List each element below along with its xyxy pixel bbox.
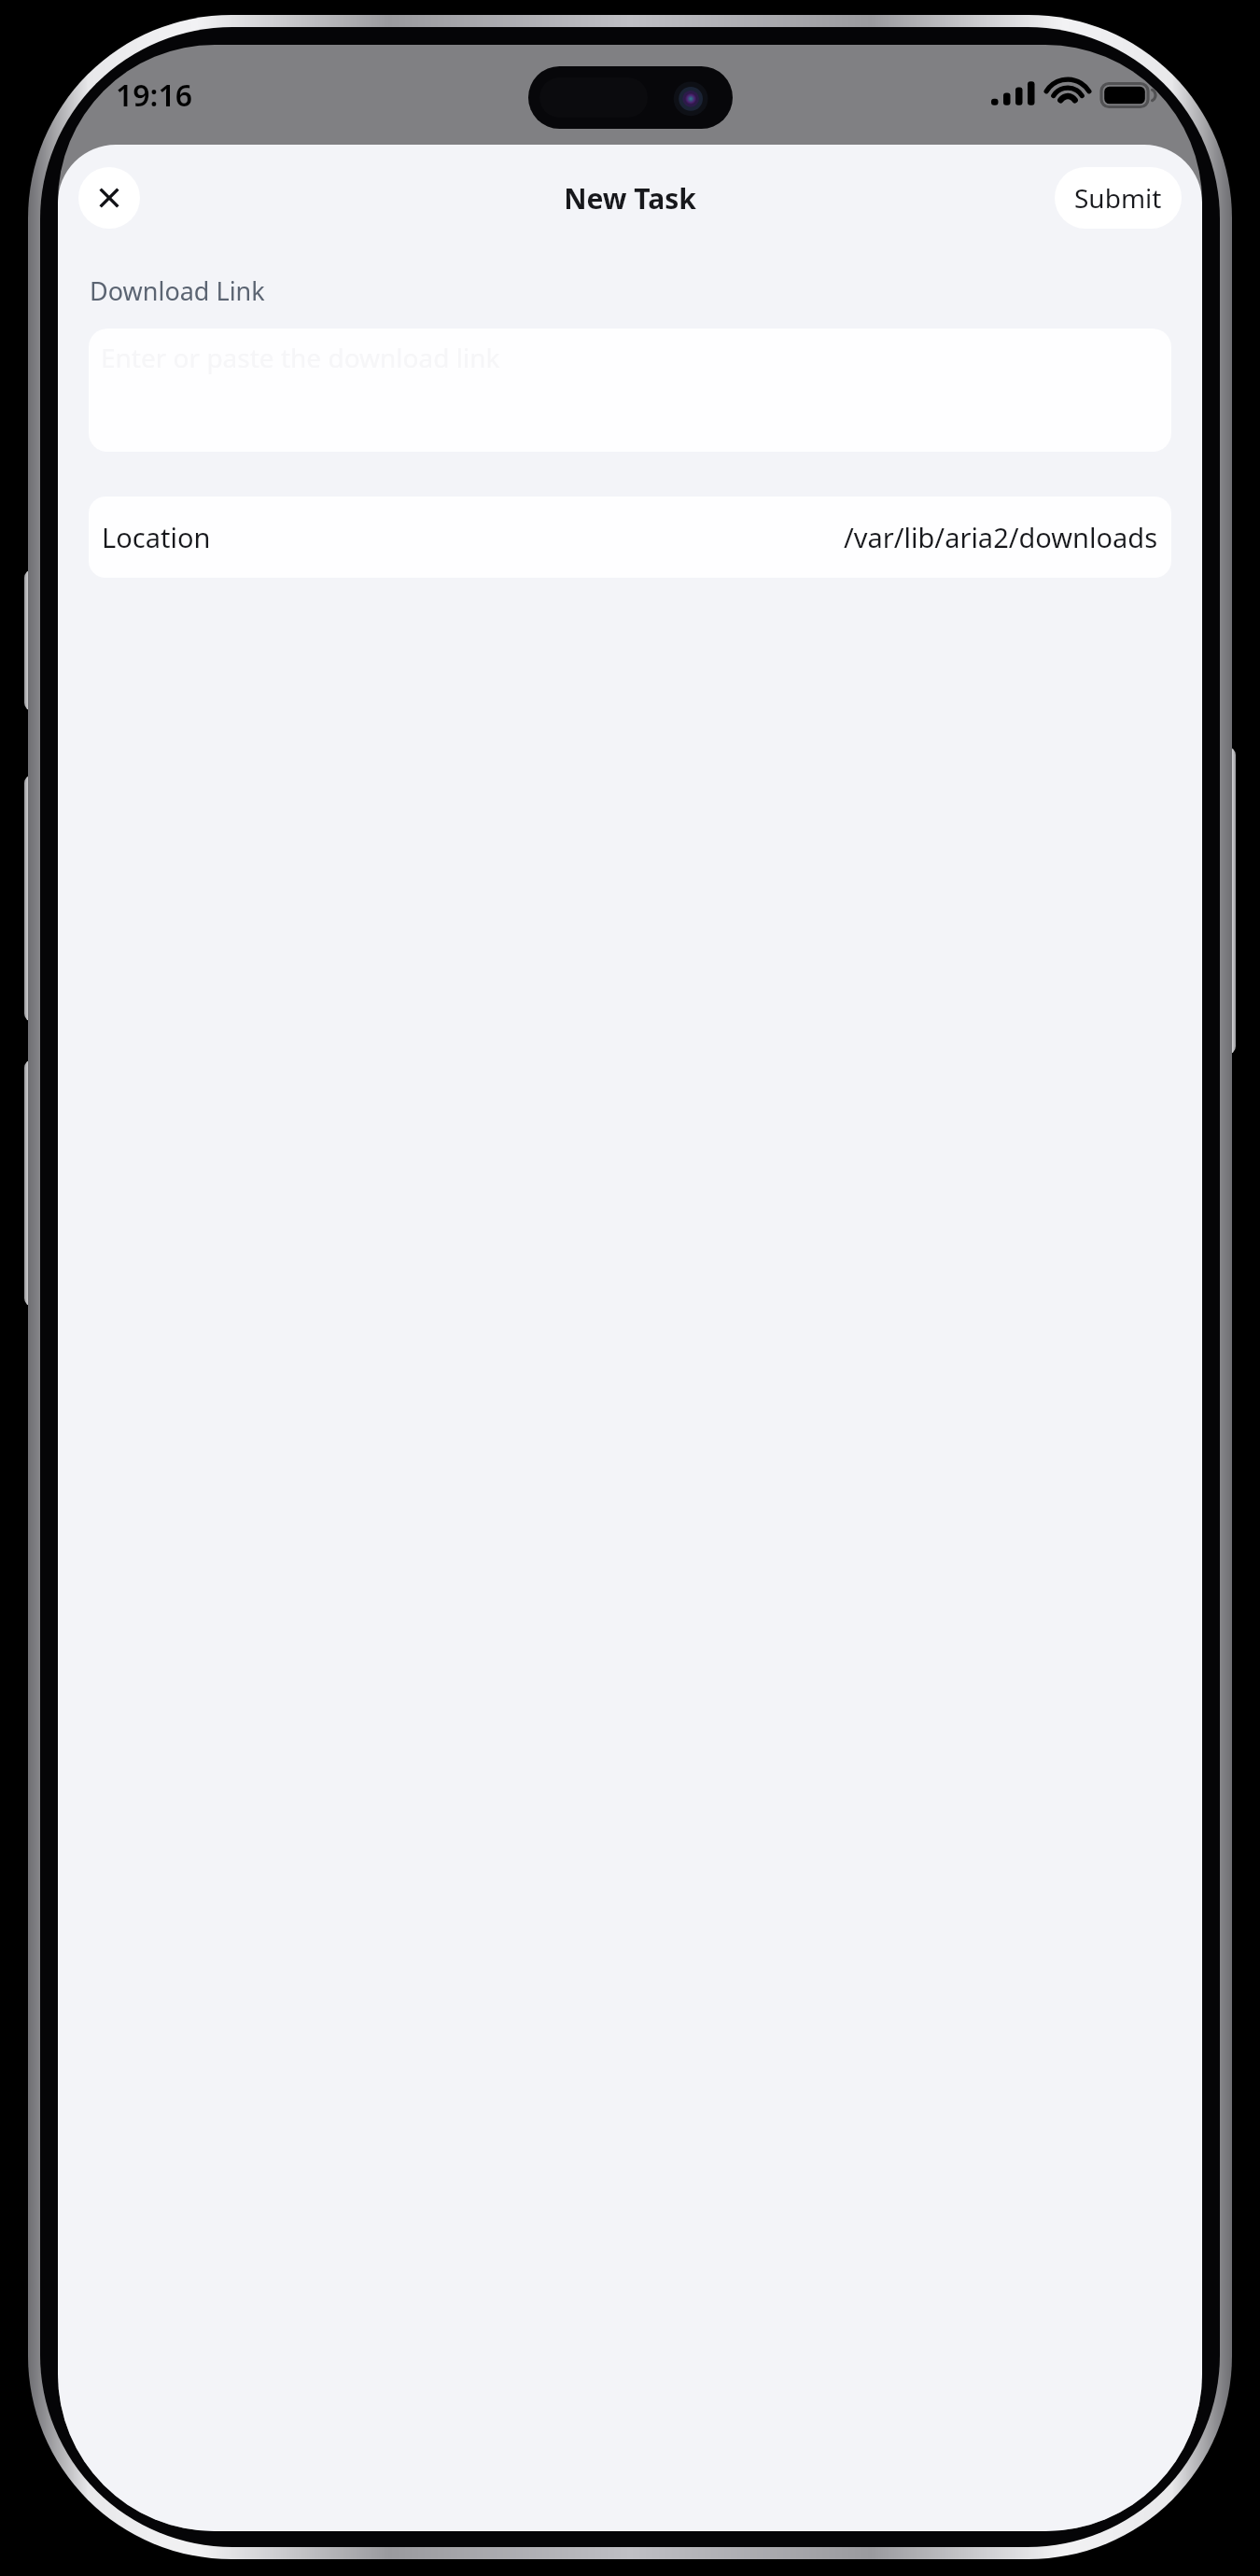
- staticText: Location: [102, 519, 211, 555]
- button[interactable]: Submit: [1055, 167, 1182, 229]
- staticText: New Task: [564, 179, 696, 217]
- staticText: /var/lib/aria2/downloads: [844, 519, 1158, 555]
- staticText: 19:16: [116, 75, 193, 116]
- staticText: Download Link: [90, 273, 265, 308]
- button[interactable]: Location: [89, 497, 1171, 578]
- staticText: Submit: [1074, 180, 1162, 216]
- button[interactable]: Close: [78, 167, 140, 229]
